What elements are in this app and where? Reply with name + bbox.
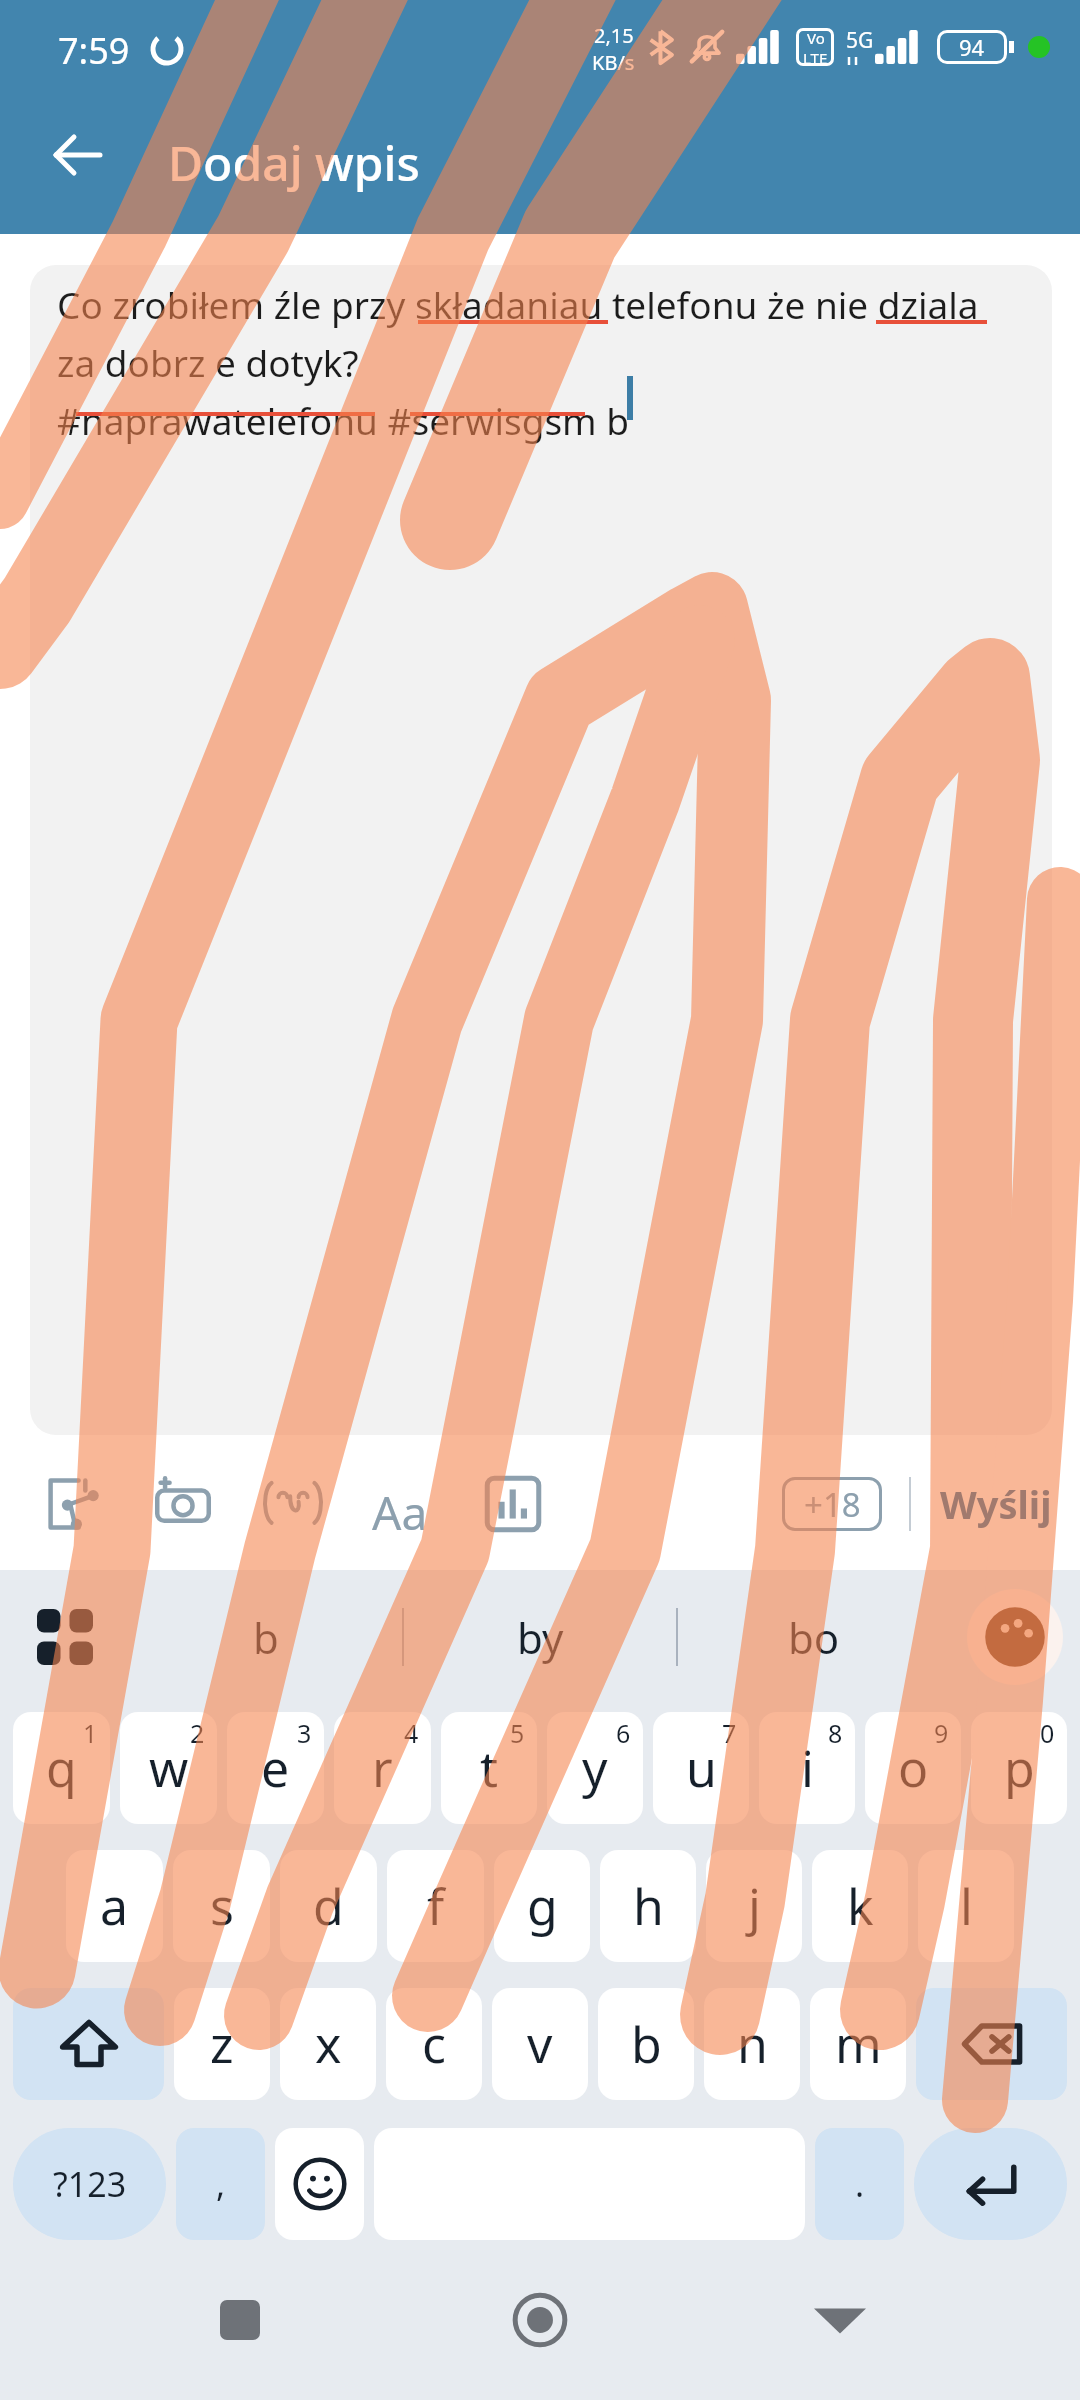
staticText: 2 bbox=[190, 1716, 205, 1750]
staticText: #naprawatelefonu #serwisgsm b bbox=[57, 395, 630, 445]
staticText: u bbox=[686, 1734, 717, 1802]
staticText: 94 bbox=[959, 32, 985, 62]
staticText: e bbox=[261, 1734, 290, 1802]
staticText: Wyślij bbox=[940, 1478, 1052, 1530]
button[interactable]: e bbox=[227, 1712, 324, 1824]
staticText: +18 bbox=[804, 1482, 861, 1527]
button[interactable]: Wyślij bbox=[938, 1478, 1054, 1530]
staticText: w bbox=[149, 1734, 189, 1802]
staticText: 3 bbox=[297, 1716, 312, 1750]
button[interactable]: k bbox=[812, 1850, 908, 1962]
staticText: f bbox=[427, 1872, 445, 1940]
staticText: m bbox=[835, 2010, 882, 2078]
button[interactable]: Co zrobiłem źle przy składaniau telefonu… bbox=[30, 265, 1052, 1435]
staticText: za dobrz e dotyk? bbox=[57, 337, 359, 387]
button[interactable]: a bbox=[66, 1850, 163, 1962]
button[interactable]: n bbox=[704, 1988, 800, 2100]
button[interactable]: Add poll bbox=[470, 1449, 556, 1559]
button[interactable]: Enter bbox=[914, 2128, 1067, 2240]
button[interactable]: o bbox=[865, 1712, 961, 1824]
button[interactable]: Emoji bbox=[275, 2128, 364, 2240]
button[interactable]: y bbox=[547, 1712, 643, 1824]
staticText: x bbox=[315, 2010, 342, 2078]
button[interactable]: Back bbox=[36, 113, 120, 197]
button[interactable]: Shift bbox=[13, 1988, 164, 2100]
button[interactable]: Formatting bbox=[360, 1449, 446, 1559]
button[interactable]: Recent apps bbox=[180, 2260, 300, 2380]
button[interactable]: , bbox=[176, 2128, 265, 2240]
button[interactable]: Back bbox=[780, 2260, 900, 2380]
button[interactable]: q bbox=[13, 1712, 110, 1824]
button[interactable]: v bbox=[492, 1988, 588, 2100]
staticText: ?123 bbox=[53, 2161, 127, 2207]
button[interactable]: g bbox=[494, 1850, 590, 1962]
button[interactable]: b bbox=[130, 1570, 402, 1704]
staticText: l bbox=[960, 1872, 973, 1940]
staticText: r bbox=[372, 1734, 393, 1802]
staticText: s bbox=[210, 1872, 234, 1940]
button[interactable]: by bbox=[404, 1570, 676, 1704]
button[interactable]: s bbox=[173, 1850, 270, 1962]
button[interactable]: l bbox=[918, 1850, 1014, 1962]
staticText: 0 bbox=[1040, 1716, 1055, 1750]
staticText: bo bbox=[788, 1609, 840, 1666]
button[interactable]: f bbox=[387, 1850, 484, 1962]
button[interactable]: ?123 bbox=[13, 2128, 166, 2240]
staticText: 6 bbox=[616, 1716, 631, 1750]
button[interactable]: Add emoticon bbox=[250, 1449, 336, 1559]
staticText: y bbox=[582, 1734, 608, 1802]
button[interactable]: Keyboard menu bbox=[0, 1570, 130, 1704]
staticText: g bbox=[527, 1872, 558, 1940]
staticText: 1 bbox=[83, 1716, 98, 1750]
button[interactable]: t bbox=[441, 1712, 537, 1824]
staticText: o bbox=[898, 1734, 929, 1802]
staticText: q bbox=[46, 1734, 77, 1802]
staticText: 7:59 bbox=[58, 26, 130, 75]
staticText: Co zrobiłem źle przy składaniau telefonu… bbox=[57, 279, 979, 329]
staticText: Aa bbox=[372, 1481, 428, 1544]
button[interactable]: Add GIF bbox=[30, 1449, 116, 1559]
button[interactable]: w bbox=[120, 1712, 217, 1824]
staticText: 5 bbox=[510, 1716, 525, 1750]
staticText: 8 bbox=[828, 1716, 843, 1750]
button[interactable]: bo bbox=[678, 1570, 950, 1704]
button[interactable]: u bbox=[653, 1712, 749, 1824]
staticText: n bbox=[737, 2010, 768, 2078]
button[interactable]: h bbox=[600, 1850, 696, 1962]
staticText: LTE bbox=[803, 48, 828, 66]
staticText: c bbox=[422, 2010, 446, 2078]
button[interactable]: z bbox=[174, 1988, 270, 2100]
staticText: k bbox=[847, 1872, 874, 1940]
staticText: h bbox=[633, 1872, 664, 1940]
button[interactable]: Theme bbox=[950, 1570, 1080, 1704]
button[interactable]: m bbox=[810, 1988, 906, 2100]
staticText: t bbox=[480, 1734, 499, 1802]
button[interactable]: . bbox=[815, 2128, 904, 2240]
staticText: 2,15 bbox=[594, 22, 634, 49]
button[interactable]: j bbox=[706, 1850, 802, 1962]
button[interactable]: Add photo bbox=[140, 1449, 226, 1559]
button[interactable]: d bbox=[280, 1850, 377, 1962]
staticText: Dodaj wpis bbox=[168, 130, 420, 195]
staticText: d bbox=[313, 1872, 344, 1940]
staticText: Vo bbox=[807, 28, 825, 48]
staticText: . bbox=[855, 2161, 865, 2207]
button[interactable]: i bbox=[759, 1712, 855, 1824]
staticText: 4 bbox=[404, 1716, 419, 1750]
staticText: by bbox=[517, 1609, 564, 1666]
staticText: z bbox=[210, 2010, 234, 2078]
button[interactable]: p bbox=[971, 1712, 1067, 1824]
button[interactable]: +18 bbox=[782, 1477, 882, 1531]
button[interactable]: r bbox=[334, 1712, 431, 1824]
staticText: , bbox=[216, 2161, 226, 2207]
button[interactable]: c bbox=[386, 1988, 482, 2100]
button[interactable]: Backspace bbox=[916, 1988, 1067, 2100]
button[interactable]: Home bbox=[480, 2260, 600, 2380]
staticText: KB/s bbox=[592, 49, 635, 72]
staticText: 7 bbox=[722, 1716, 737, 1750]
staticText: a bbox=[100, 1872, 129, 1940]
button[interactable]: x bbox=[280, 1988, 376, 2100]
staticText: v bbox=[527, 2010, 553, 2078]
button[interactable]: b bbox=[598, 1988, 694, 2100]
